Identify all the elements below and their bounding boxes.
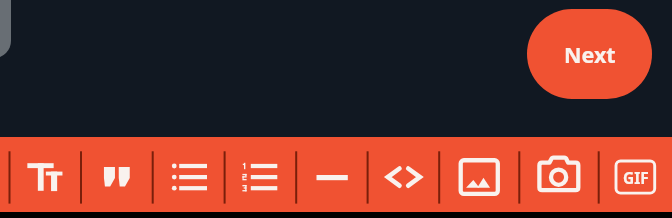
button[interactable]: Insert image — [439, 137, 519, 212]
button[interactable]: Code block — [368, 137, 440, 212]
button[interactable]: Numbered list — [225, 137, 297, 212]
button[interactable]: Text format — [10, 137, 82, 212]
staticText: Next — [564, 40, 616, 69]
button[interactable]: Quote — [81, 137, 153, 212]
button[interactable]: Bulleted list — [153, 137, 225, 212]
button[interactable]: Next — [527, 9, 652, 99]
button[interactable]: Insert GIF — [599, 137, 672, 212]
button[interactable]: Horizontal rule — [296, 137, 367, 212]
button[interactable]: Camera — [519, 137, 598, 212]
staticText: GIF — [623, 167, 649, 188]
